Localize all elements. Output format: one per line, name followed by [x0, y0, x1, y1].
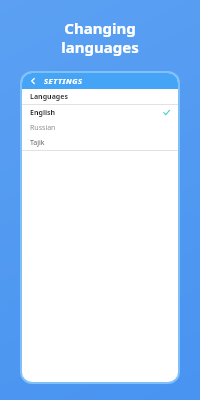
staticText: Changing languages: [16, 18, 184, 57]
button[interactable]: English: [22, 105, 178, 120]
staticText: Russian: [30, 123, 56, 133]
button[interactable]: Back: [22, 73, 44, 89]
staticText: Languages: [30, 92, 68, 102]
staticText: Tajik: [30, 138, 45, 148]
staticText: English: [30, 108, 56, 118]
button[interactable]: Russian: [22, 120, 178, 135]
button[interactable]: Tajik: [22, 135, 178, 150]
staticText: SETTINGS: [44, 76, 83, 86]
